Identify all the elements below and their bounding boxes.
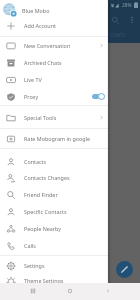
button[interactable]: Settings — [0, 257, 108, 274]
staticText: Calls — [24, 242, 36, 249]
button[interactable]: Calls — [0, 237, 108, 254]
staticText: Theme Settings — [24, 277, 64, 284]
button[interactable]: Profile — [3, 3, 17, 17]
button[interactable]: Search — [111, 16, 120, 25]
button[interactable]: Rate Mobogram in google — [0, 130, 108, 147]
button[interactable]: Proxy — [0, 88, 108, 105]
staticText: People Nearby — [24, 225, 62, 232]
button[interactable]: Recents — [27, 285, 39, 297]
button[interactable]: Theme Settings — [0, 272, 108, 289]
staticText: Contacts — [24, 158, 47, 165]
staticText: Specific Contacts — [24, 208, 67, 215]
button[interactable]: New Conversation — [0, 37, 108, 54]
staticText: Blue Mobo — [22, 7, 50, 14]
staticText: New Conversation — [24, 42, 71, 49]
button[interactable]: Contacts — [0, 153, 108, 170]
button[interactable]: Live TV — [0, 71, 108, 88]
button[interactable]: Back — [102, 285, 114, 297]
button[interactable]: More options — [129, 16, 137, 24]
staticText: Proxy — [24, 93, 39, 100]
button[interactable]: Contacts Changes — [0, 169, 108, 186]
staticText: Add Account — [24, 22, 56, 29]
staticText: Friend Finder — [24, 191, 58, 198]
staticText: CHATS — [110, 32, 126, 39]
button[interactable]: Home — [64, 285, 76, 297]
staticText: Settings — [24, 262, 45, 269]
staticText: Live TV — [24, 76, 42, 83]
staticText: 28% — [122, 2, 132, 9]
staticText: Contacts Changes — [24, 174, 70, 181]
button[interactable]: Archived Chats — [0, 54, 108, 71]
button[interactable]: New message — [116, 261, 133, 278]
staticText: Special Tools — [24, 114, 57, 121]
button[interactable]: Friend Finder — [0, 186, 108, 203]
button[interactable]: Specific Contacts — [0, 203, 108, 220]
staticText: Archived Chats — [24, 59, 62, 66]
button[interactable]: Add Account — [0, 17, 108, 34]
staticText: Rate Mobogram in google — [24, 135, 91, 142]
button[interactable]: Special Tools — [0, 109, 108, 126]
button[interactable]: People Nearby — [0, 220, 108, 237]
